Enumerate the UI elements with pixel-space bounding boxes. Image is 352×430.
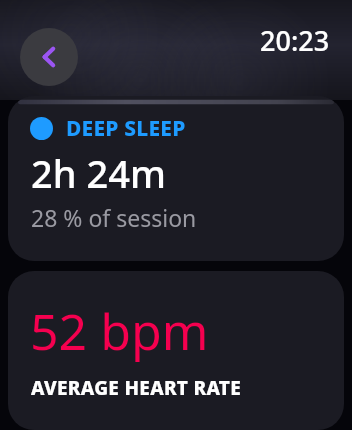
staticText: 28 % of session (31, 202, 197, 233)
staticText: 2h 24m (31, 147, 166, 199)
button[interactable]: Back (20, 28, 78, 86)
staticText: 52 bpm (30, 297, 209, 365)
staticText: DEEP SLEEP (66, 114, 186, 143)
staticText: 20:23 (260, 22, 330, 59)
button[interactable]: 52 bpm (8, 271, 344, 430)
staticText: AVERAGE HEART RATE (31, 375, 242, 401)
button[interactable]: DEEP SLEEP (8, 96, 344, 261)
